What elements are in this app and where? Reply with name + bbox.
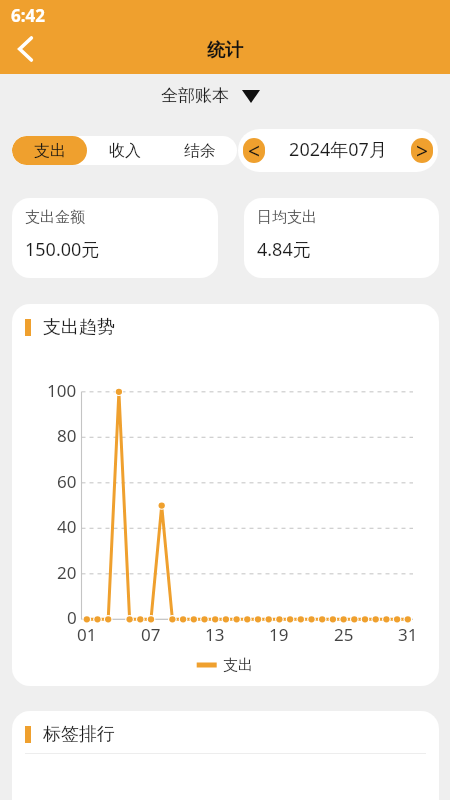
staticText: 31	[398, 623, 418, 646]
staticText: 支出	[34, 141, 66, 161]
button[interactable]: 全部账本	[161, 85, 260, 106]
staticText: 标签排行	[43, 723, 115, 746]
staticText: 20	[57, 561, 77, 584]
button[interactable]: 结余	[162, 136, 237, 165]
staticText: 60	[57, 470, 77, 493]
button[interactable]: 支出金额	[12, 198, 218, 278]
staticText: 支出	[223, 656, 253, 675]
staticText: 13	[205, 623, 225, 646]
button[interactable]: Next month	[411, 138, 433, 163]
staticText: 6:42	[11, 4, 45, 27]
staticText: 19	[269, 623, 289, 646]
staticText: <	[248, 138, 261, 162]
staticText: 日均支出	[257, 208, 317, 227]
button[interactable]: 日均支出	[244, 198, 439, 278]
staticText: 全部账本	[161, 85, 229, 106]
staticText: 支出金额	[25, 208, 85, 227]
staticText: 100	[47, 379, 77, 402]
staticText: 支出趋势	[43, 316, 115, 339]
button[interactable]: 支出	[12, 136, 87, 165]
staticText: >	[416, 138, 429, 162]
staticText: 结余	[184, 141, 216, 161]
staticText: 07	[141, 623, 161, 646]
button[interactable]: Previous month	[243, 138, 265, 163]
staticText: 统计	[207, 39, 243, 62]
staticText: 收入	[109, 141, 141, 161]
staticText: 2024年07月	[265, 137, 411, 162]
button[interactable]: 收入	[87, 136, 162, 165]
staticText: 150.00元	[25, 237, 100, 262]
staticText: 25	[334, 623, 354, 646]
button[interactable]: Back	[3, 27, 47, 71]
staticText: 0	[67, 606, 77, 629]
staticText: 80	[57, 424, 77, 447]
staticText: 4.84元	[257, 237, 311, 262]
staticText: 01	[77, 623, 97, 646]
staticText: 40	[57, 515, 77, 538]
